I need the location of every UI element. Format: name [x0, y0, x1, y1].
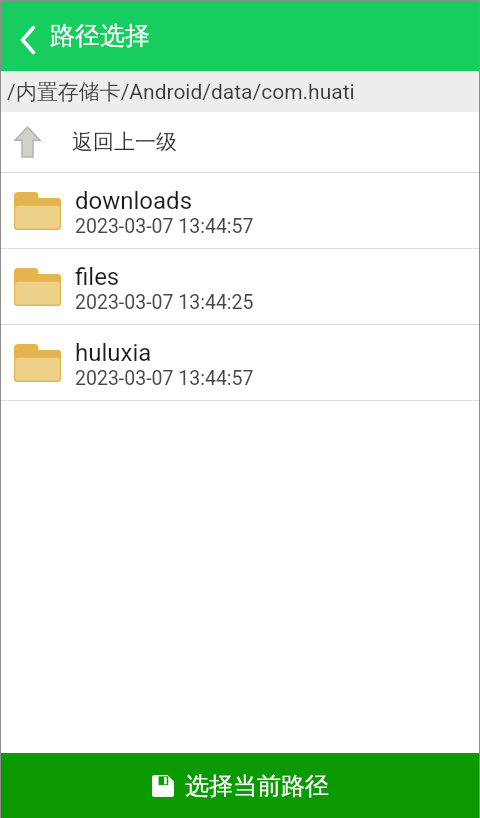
button[interactable]: 选择当前路径: [0, 753, 480, 818]
staticText: 路径选择: [50, 20, 150, 51]
staticText: huluxia: [75, 339, 152, 367]
staticText: files: [75, 263, 120, 291]
staticText: 2023-03-07 13:44:57: [75, 215, 254, 238]
staticText: downloads: [75, 187, 193, 215]
button[interactable]: downloads: [0, 173, 480, 249]
staticText: /内置存储卡/Android/data/com.huati: [7, 79, 355, 105]
button[interactable]: 返回上一级: [0, 112, 480, 172]
button[interactable]: files: [0, 249, 480, 325]
staticText: 2023-03-07 13:44:57: [75, 367, 254, 390]
button[interactable]: huluxia: [0, 325, 480, 401]
staticText: 2023-03-07 13:44:25: [75, 291, 254, 314]
button[interactable]: [0, 0, 50, 71]
staticText: 选择当前路径: [185, 771, 329, 801]
staticText: 返回上一级: [72, 129, 177, 155]
